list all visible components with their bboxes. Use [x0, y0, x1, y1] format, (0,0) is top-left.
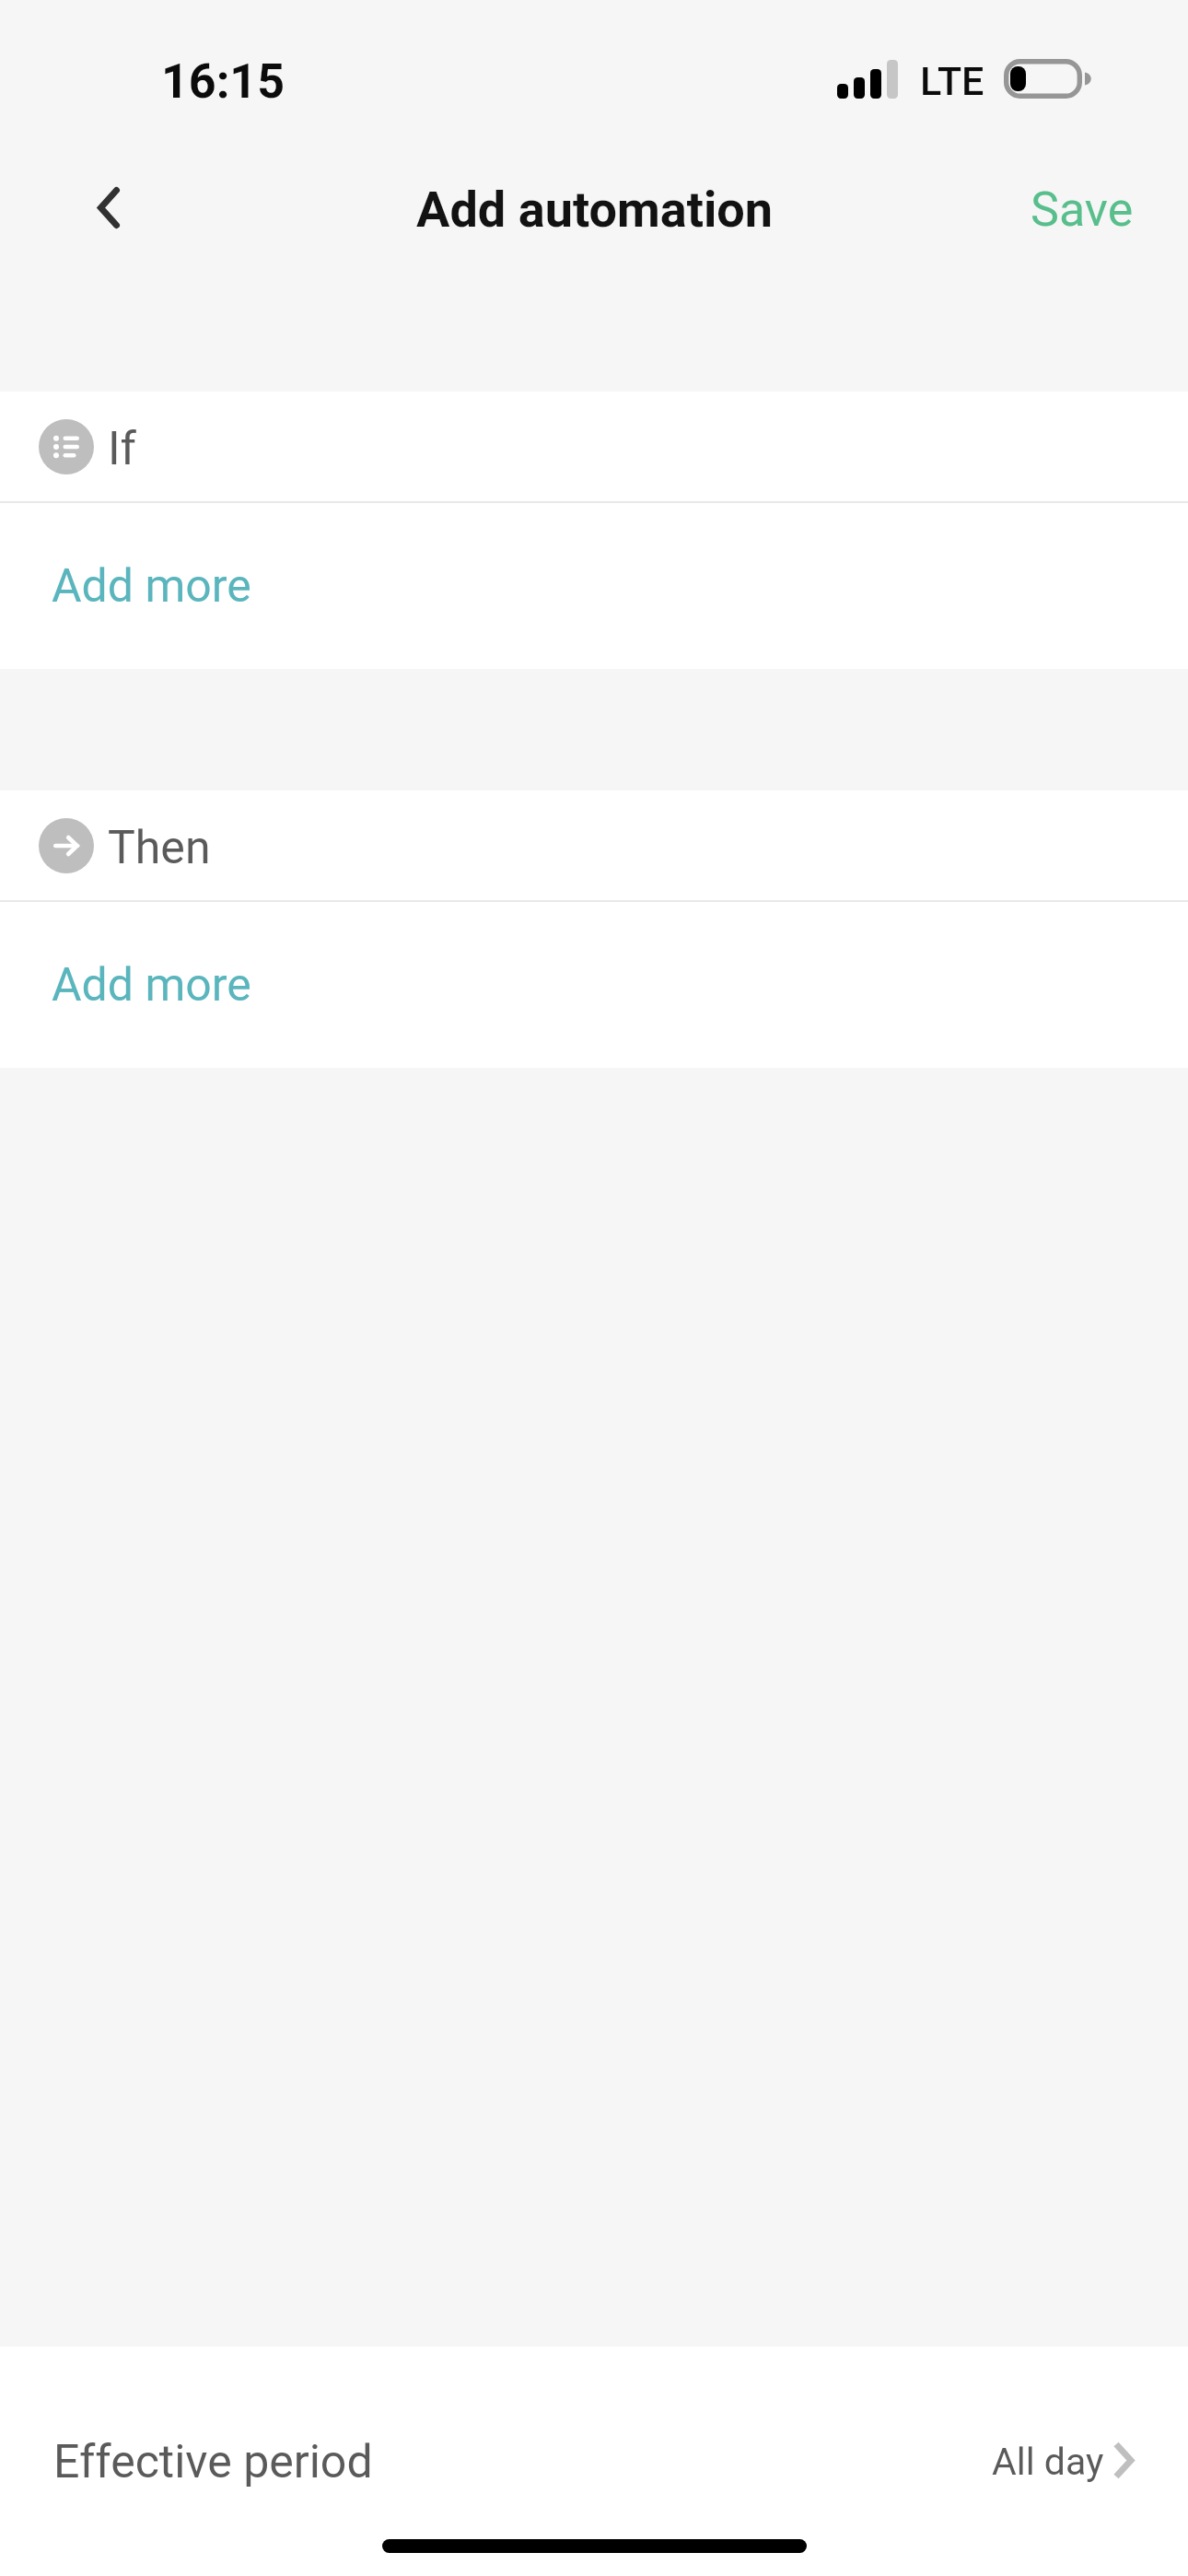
button[interactable]: If [0, 392, 1188, 501]
staticText: If [108, 422, 136, 476]
staticText: Then [108, 821, 211, 875]
button[interactable]: Save [976, 146, 1188, 269]
button[interactable]: Back [64, 163, 153, 252]
button[interactable]: Then [0, 790, 1188, 900]
staticText: Effective period [53, 2435, 373, 2489]
staticText: Add automation [416, 181, 773, 239]
button[interactable]: Effective period [0, 2347, 1188, 2573]
staticText: Save [1031, 181, 1134, 238]
button[interactable]: Add more [0, 902, 1188, 1068]
staticText: All day [992, 2440, 1104, 2484]
staticText: 16:15 [161, 53, 285, 110]
staticText: Add more [52, 559, 251, 614]
button[interactable]: Add more [0, 503, 1188, 669]
staticText: Add more [52, 958, 251, 1013]
staticText: LTE [920, 58, 984, 104]
